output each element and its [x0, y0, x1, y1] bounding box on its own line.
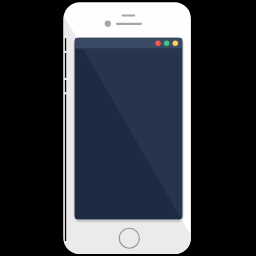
button[interactable]: Smartphone illustration: [0, 0, 256, 256]
